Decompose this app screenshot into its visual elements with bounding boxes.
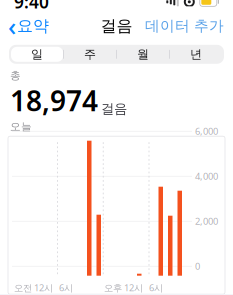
staticText: 걸음 <box>100 16 132 36</box>
staticText: 요약 <box>17 16 49 36</box>
staticText: 18,974 <box>10 82 98 119</box>
staticText: 일 <box>31 47 43 62</box>
staticText: 4,000 <box>195 170 218 182</box>
staticText: 9:40 <box>14 0 49 13</box>
staticText: 2,000 <box>195 215 218 227</box>
staticText: 월 <box>137 47 149 62</box>
button[interactable]: ‹ <box>4 6 55 46</box>
staticText: 6시 <box>149 281 163 294</box>
staticText: 총 <box>10 69 21 82</box>
button[interactable]: 일 <box>11 47 63 62</box>
staticText: 걸음 <box>101 101 127 117</box>
button[interactable]: 월 <box>117 47 169 62</box>
staticText: 년 <box>190 47 202 62</box>
staticText: 0 <box>195 260 200 272</box>
staticText: 6,000 <box>195 125 218 137</box>
button[interactable]: 데이터 추가 <box>140 14 229 38</box>
button[interactable]: 주 <box>64 47 116 62</box>
button[interactable]: 년 <box>170 47 222 62</box>
staticText: 오후 12시 <box>104 281 143 294</box>
staticText: 6시 <box>59 281 73 294</box>
staticText: 오전 12시 <box>14 281 53 294</box>
staticText: 주 <box>84 47 96 62</box>
staticText: ‹ <box>8 9 16 43</box>
staticText: 데이터 추가 <box>145 17 224 35</box>
staticText: 오늘 <box>10 120 32 133</box>
